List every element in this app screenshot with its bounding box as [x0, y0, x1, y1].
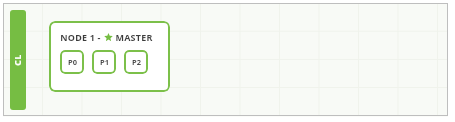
- staticText: CLUSTER: [12, 52, 24, 68]
- staticText: P0: [68, 57, 77, 67]
- staticText: P2: [132, 57, 141, 67]
- button[interactable]: P0: [60, 50, 84, 74]
- button[interactable]: NODE 1 -: [49, 21, 170, 92]
- staticText: P1: [100, 57, 109, 67]
- button[interactable]: CLUSTER: [10, 10, 26, 110]
- button[interactable]: P2: [124, 50, 148, 74]
- other: Master node: [104, 33, 113, 42]
- button[interactable]: P1: [92, 50, 116, 74]
- staticText: NODE 1 -: [60, 31, 101, 43]
- staticText: MASTER: [115, 31, 153, 43]
